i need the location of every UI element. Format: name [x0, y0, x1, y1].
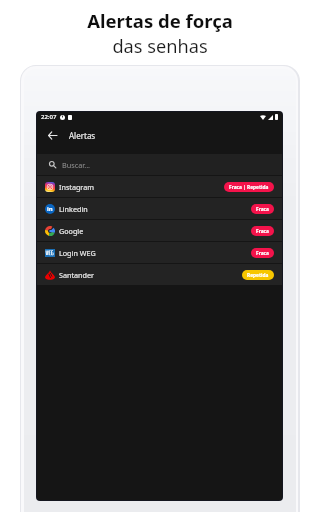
staticText: Instagram: [59, 182, 94, 192]
staticText: Fraca: [256, 228, 269, 235]
staticText: Repetida: [247, 272, 269, 279]
button[interactable]: Buscar: [37, 154, 282, 175]
staticText: Fraca | Repetida: [229, 184, 269, 191]
staticText: Alertas: [69, 130, 96, 141]
staticText: das senhas: [112, 34, 208, 59]
button[interactable]: in: [37, 198, 282, 220]
staticText: in: [47, 205, 53, 213]
staticText: Google: [59, 226, 84, 236]
staticText: Fraca: [256, 250, 269, 257]
button[interactable]: Santander: [37, 264, 282, 286]
staticText: Alertas de força: [87, 8, 233, 33]
staticText: Fraca: [256, 206, 269, 213]
staticText: 22:07: [41, 113, 57, 121]
button[interactable]: Login WEG: [37, 242, 282, 264]
staticText: Login WEG: [59, 248, 96, 258]
staticText: Santander: [59, 270, 94, 280]
button[interactable]: Google: [37, 220, 282, 242]
button[interactable]: Voltar: [44, 127, 60, 143]
staticText: Buscar...: [62, 160, 91, 170]
staticText: Linkedin: [59, 204, 88, 214]
button[interactable]: Instagram: [37, 176, 282, 198]
